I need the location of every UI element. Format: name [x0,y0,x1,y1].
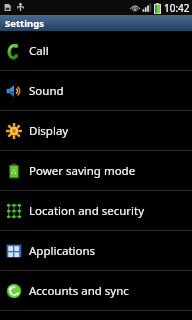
staticText: Accounts and sync [29,283,129,299]
staticText: Call [29,43,49,59]
staticText: Power saving mode [29,163,136,179]
button[interactable]: Location and security [0,191,192,230]
staticText: Applications [29,243,96,259]
button[interactable]: Power saving mode [0,151,192,190]
staticText: 10:42 [164,1,190,15]
button[interactable]: Display [0,111,192,150]
button[interactable]: Call [0,31,192,70]
button[interactable]: Accounts and sync [0,271,192,310]
staticText: Display [29,123,69,139]
staticText: Settings [5,17,44,30]
button[interactable]: Applications [0,231,192,270]
button[interactable]: Sound [0,71,192,110]
staticText: Location and security [29,203,145,219]
staticText: Sound [29,83,64,99]
